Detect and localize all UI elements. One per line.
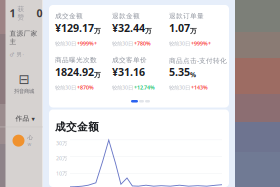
staticText: ¥31.16 xyxy=(112,65,145,79)
staticText: +999%+ xyxy=(191,40,211,47)
staticText: 30万 xyxy=(56,140,67,147)
button[interactable]: 商品点击-支付转化 xyxy=(169,56,226,90)
staticText: 5.35 xyxy=(169,65,190,79)
staticText: 退款订单量 xyxy=(169,12,204,20)
staticText: +143% xyxy=(191,84,208,91)
staticText: 较前30日 xyxy=(55,84,76,91)
staticText: 1824.92 xyxy=(55,65,94,79)
button[interactable]: 退款订单量 xyxy=(169,12,226,46)
staticText: W xyxy=(27,142,31,147)
staticText: 成交金额 xyxy=(55,12,83,20)
staticText: 1 xyxy=(9,6,15,20)
staticText: 万 xyxy=(145,27,152,35)
button[interactable]: 商品曝光次数 xyxy=(55,56,112,90)
staticText: 万 xyxy=(94,27,101,35)
staticText: 20万 xyxy=(56,155,67,162)
staticText: 作品 ▾ xyxy=(15,114,34,123)
staticText: 较前30日 xyxy=(112,84,133,91)
staticText: ¥129.17 xyxy=(55,21,94,35)
staticText: 较前30日 xyxy=(169,40,190,47)
staticText: 成交客单价 xyxy=(112,56,147,64)
staticText: 心 xyxy=(27,134,32,141)
staticText: 10万 xyxy=(56,170,67,177)
staticText: ⊟ xyxy=(18,72,29,87)
staticText: 较前30日 xyxy=(55,40,76,47)
staticText: 直源厂家 主 xyxy=(9,29,37,46)
staticText: +999%+ xyxy=(77,40,97,47)
staticText: 获赞 xyxy=(17,5,24,21)
staticText: 成交金额 xyxy=(55,120,99,134)
staticText: % xyxy=(190,70,196,79)
staticText: 较前30日 xyxy=(112,40,133,47)
staticText: +870% xyxy=(77,84,94,91)
staticText: 较前30日 xyxy=(169,84,190,91)
button[interactable]: 成交客单价 xyxy=(112,56,169,90)
staticText: ♂ 男 · xyxy=(9,51,23,58)
staticText: 万 xyxy=(190,27,197,35)
staticText: 商品曝光次数 xyxy=(55,56,97,64)
staticText: ¥32.44 xyxy=(112,21,145,35)
staticText: 万 xyxy=(94,71,101,79)
staticText: +12.74% xyxy=(134,84,155,91)
staticText: 商品点击-支付转化 xyxy=(169,56,227,65)
button[interactable]: 退款金额 xyxy=(112,12,169,46)
staticText: +780% xyxy=(134,40,151,47)
staticText: 1.07 xyxy=(169,21,190,35)
staticText: 退款金额 xyxy=(112,12,140,20)
button[interactable]: 成交金额 xyxy=(55,12,112,46)
staticText: 抖音商城 xyxy=(14,88,34,95)
staticText: 0 xyxy=(36,6,42,20)
